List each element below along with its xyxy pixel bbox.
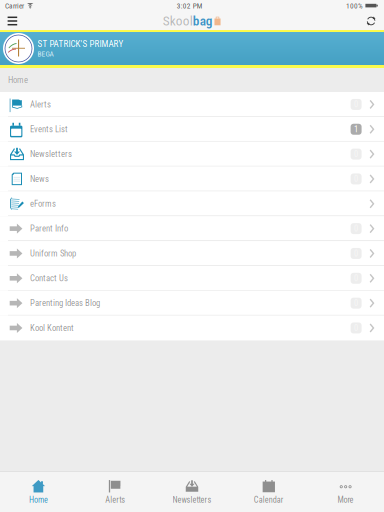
staticText: Home	[29, 495, 48, 505]
button[interactable]: Parent Info	[0, 216, 384, 241]
button[interactable]: Calendar	[230, 471, 307, 512]
staticText: Uniform Shop	[30, 248, 76, 259]
button[interactable]: Refresh	[356, 12, 384, 30]
button[interactable]: Alerts	[0, 92, 384, 117]
staticText: Home	[8, 75, 28, 85]
staticText: Parenting Ideas Blog	[30, 298, 100, 308]
staticText: Alerts	[105, 495, 125, 505]
staticText: Parent Info	[30, 223, 68, 234]
button[interactable]: News	[0, 166, 384, 191]
staticText: News	[30, 174, 49, 184]
staticText: ST PATRICK'S PRIMARY	[37, 39, 123, 49]
button[interactable]: More	[307, 471, 384, 512]
button[interactable]: Contact Us	[0, 266, 384, 291]
button[interactable]: Kool Kontent	[0, 316, 384, 340]
staticText: 100%	[346, 2, 363, 10]
button[interactable]: eForms	[0, 191, 384, 216]
staticText: Kool Kontent	[30, 323, 74, 333]
staticText: Newsletters	[30, 149, 72, 159]
staticText: Alerts	[30, 99, 51, 109]
staticText: Events List	[30, 124, 68, 134]
button[interactable]: Alerts	[77, 471, 154, 512]
staticText: Skool	[163, 13, 193, 29]
button[interactable]: Home	[0, 471, 77, 512]
button[interactable]: Menu	[0, 12, 30, 30]
staticText: eForms	[30, 199, 56, 209]
staticText: BEGA	[37, 50, 53, 58]
staticText: 1	[354, 124, 358, 134]
staticText: Carrier	[5, 2, 24, 10]
button[interactable]: Events List	[0, 117, 384, 142]
button[interactable]: Uniform Shop	[0, 241, 384, 266]
staticText: Newsletters	[172, 495, 211, 505]
button[interactable]: Parenting Ideas Blog	[0, 291, 384, 315]
button[interactable]: Newsletters	[154, 471, 230, 512]
staticText: Contact Us	[30, 273, 68, 283]
staticText: 3:02 PM	[177, 2, 203, 10]
button[interactable]: Newsletters	[0, 142, 384, 166]
staticText: Calendar	[254, 495, 284, 505]
staticText: More	[338, 495, 354, 505]
staticText: bag	[193, 13, 213, 29]
